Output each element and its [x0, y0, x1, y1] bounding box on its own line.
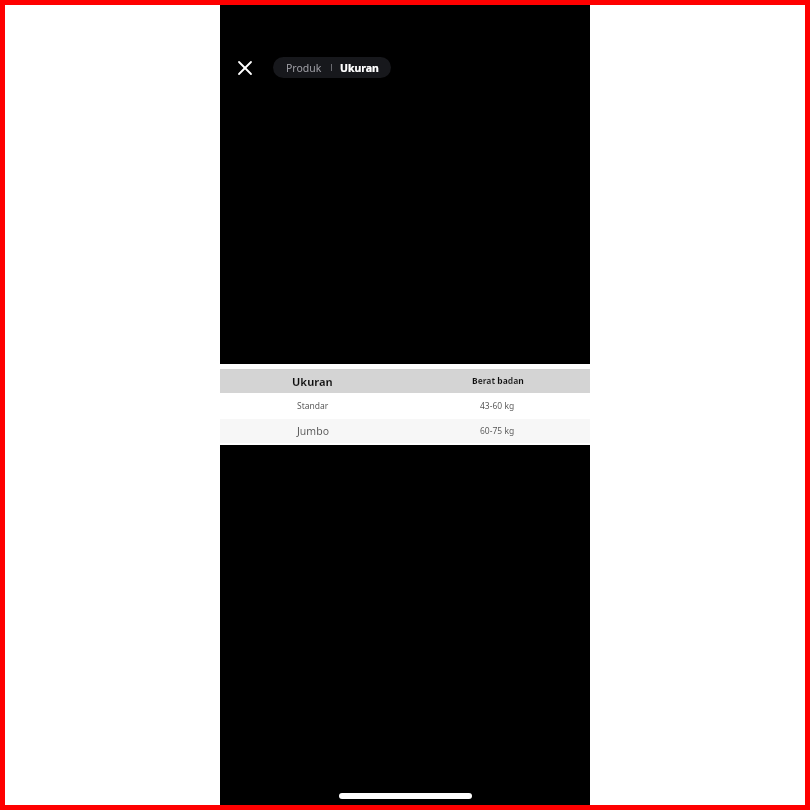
staticText: Ukuran: [292, 374, 333, 389]
staticText: Jumbo: [297, 424, 329, 438]
staticText: Standar: [297, 400, 329, 412]
button[interactable]: Close: [229, 52, 261, 84]
button[interactable]: Standar: [220, 393, 590, 419]
staticText: Produk: [286, 61, 322, 75]
button[interactable]: Produk: [273, 57, 391, 78]
staticText: 60-75 kg: [480, 425, 515, 437]
staticText: Berat badan: [472, 375, 524, 387]
staticText: Ukuran: [340, 61, 379, 75]
button[interactable]: Jumbo: [220, 419, 590, 443]
staticText: 43-60 kg: [480, 400, 515, 412]
